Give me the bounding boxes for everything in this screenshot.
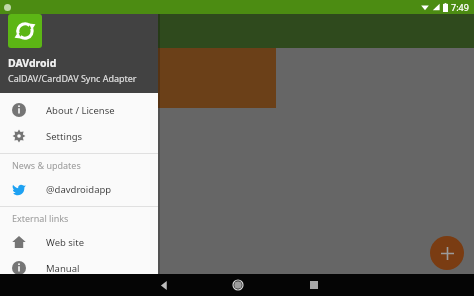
button[interactable]: About / License <box>0 97 158 123</box>
staticText: About / License <box>46 104 115 117</box>
staticText: External links <box>12 212 69 224</box>
button[interactable]: @davdroidapp <box>0 176 158 202</box>
staticText: CalDAV/CardDAV Sync Adapter <box>8 72 137 84</box>
staticText: Manual <box>46 262 80 275</box>
button[interactable]: Home <box>226 274 250 296</box>
staticText: @davdroidapp <box>46 183 112 196</box>
staticText: News & updates <box>12 159 81 171</box>
button[interactable]: Web site <box>0 229 158 255</box>
button[interactable]: Manual <box>0 255 158 281</box>
staticText: Settings <box>46 130 83 143</box>
button[interactable]: Settings <box>0 123 158 149</box>
staticText: test@example.com <box>8 80 107 95</box>
staticText: 7:49 <box>451 1 469 13</box>
staticText: DAVdroid <box>8 56 57 70</box>
button[interactable]: Add account <box>430 236 464 270</box>
staticText: Web site <box>46 236 85 249</box>
button[interactable]: Recent apps <box>302 274 326 296</box>
button[interactable]: Back <box>152 274 176 296</box>
button[interactable]: test@example.com <box>4 48 276 108</box>
